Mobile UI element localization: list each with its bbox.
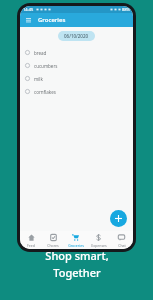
button[interactable]: Open navigation menu bbox=[24, 16, 33, 25]
staticText: Feed bbox=[27, 243, 35, 248]
button[interactable]: Chat bbox=[110, 231, 133, 249]
button[interactable]: 06/10/2020 bbox=[58, 31, 95, 41]
staticText: Groceries bbox=[38, 16, 66, 24]
button[interactable]: Chores bbox=[42, 231, 64, 249]
staticText: Together bbox=[53, 265, 101, 280]
staticText: cornflakes bbox=[34, 89, 56, 95]
button[interactable]: Add grocery item bbox=[110, 210, 127, 227]
staticText: Chat bbox=[118, 243, 126, 248]
button[interactable]: Groceries bbox=[64, 231, 87, 249]
staticText: Shop smart, bbox=[45, 248, 109, 263]
staticText: milk bbox=[34, 76, 43, 82]
button[interactable]: milk bbox=[20, 72, 133, 85]
staticText: Groceries bbox=[68, 243, 84, 248]
button[interactable]: bread bbox=[20, 46, 133, 59]
button[interactable]: Feed bbox=[20, 231, 42, 249]
staticText: Expenses bbox=[91, 243, 107, 248]
button[interactable]: cucumbers bbox=[20, 59, 133, 72]
staticText: Chores bbox=[47, 243, 59, 248]
button[interactable]: Expenses bbox=[87, 231, 110, 249]
staticText: 88% bbox=[122, 7, 130, 12]
staticText: bread bbox=[34, 50, 47, 56]
staticText: 14:45 bbox=[23, 7, 34, 12]
staticText: 06/10/2020 bbox=[64, 33, 89, 39]
staticText: cucumbers bbox=[34, 63, 58, 69]
button[interactable]: cornflakes bbox=[20, 85, 133, 98]
